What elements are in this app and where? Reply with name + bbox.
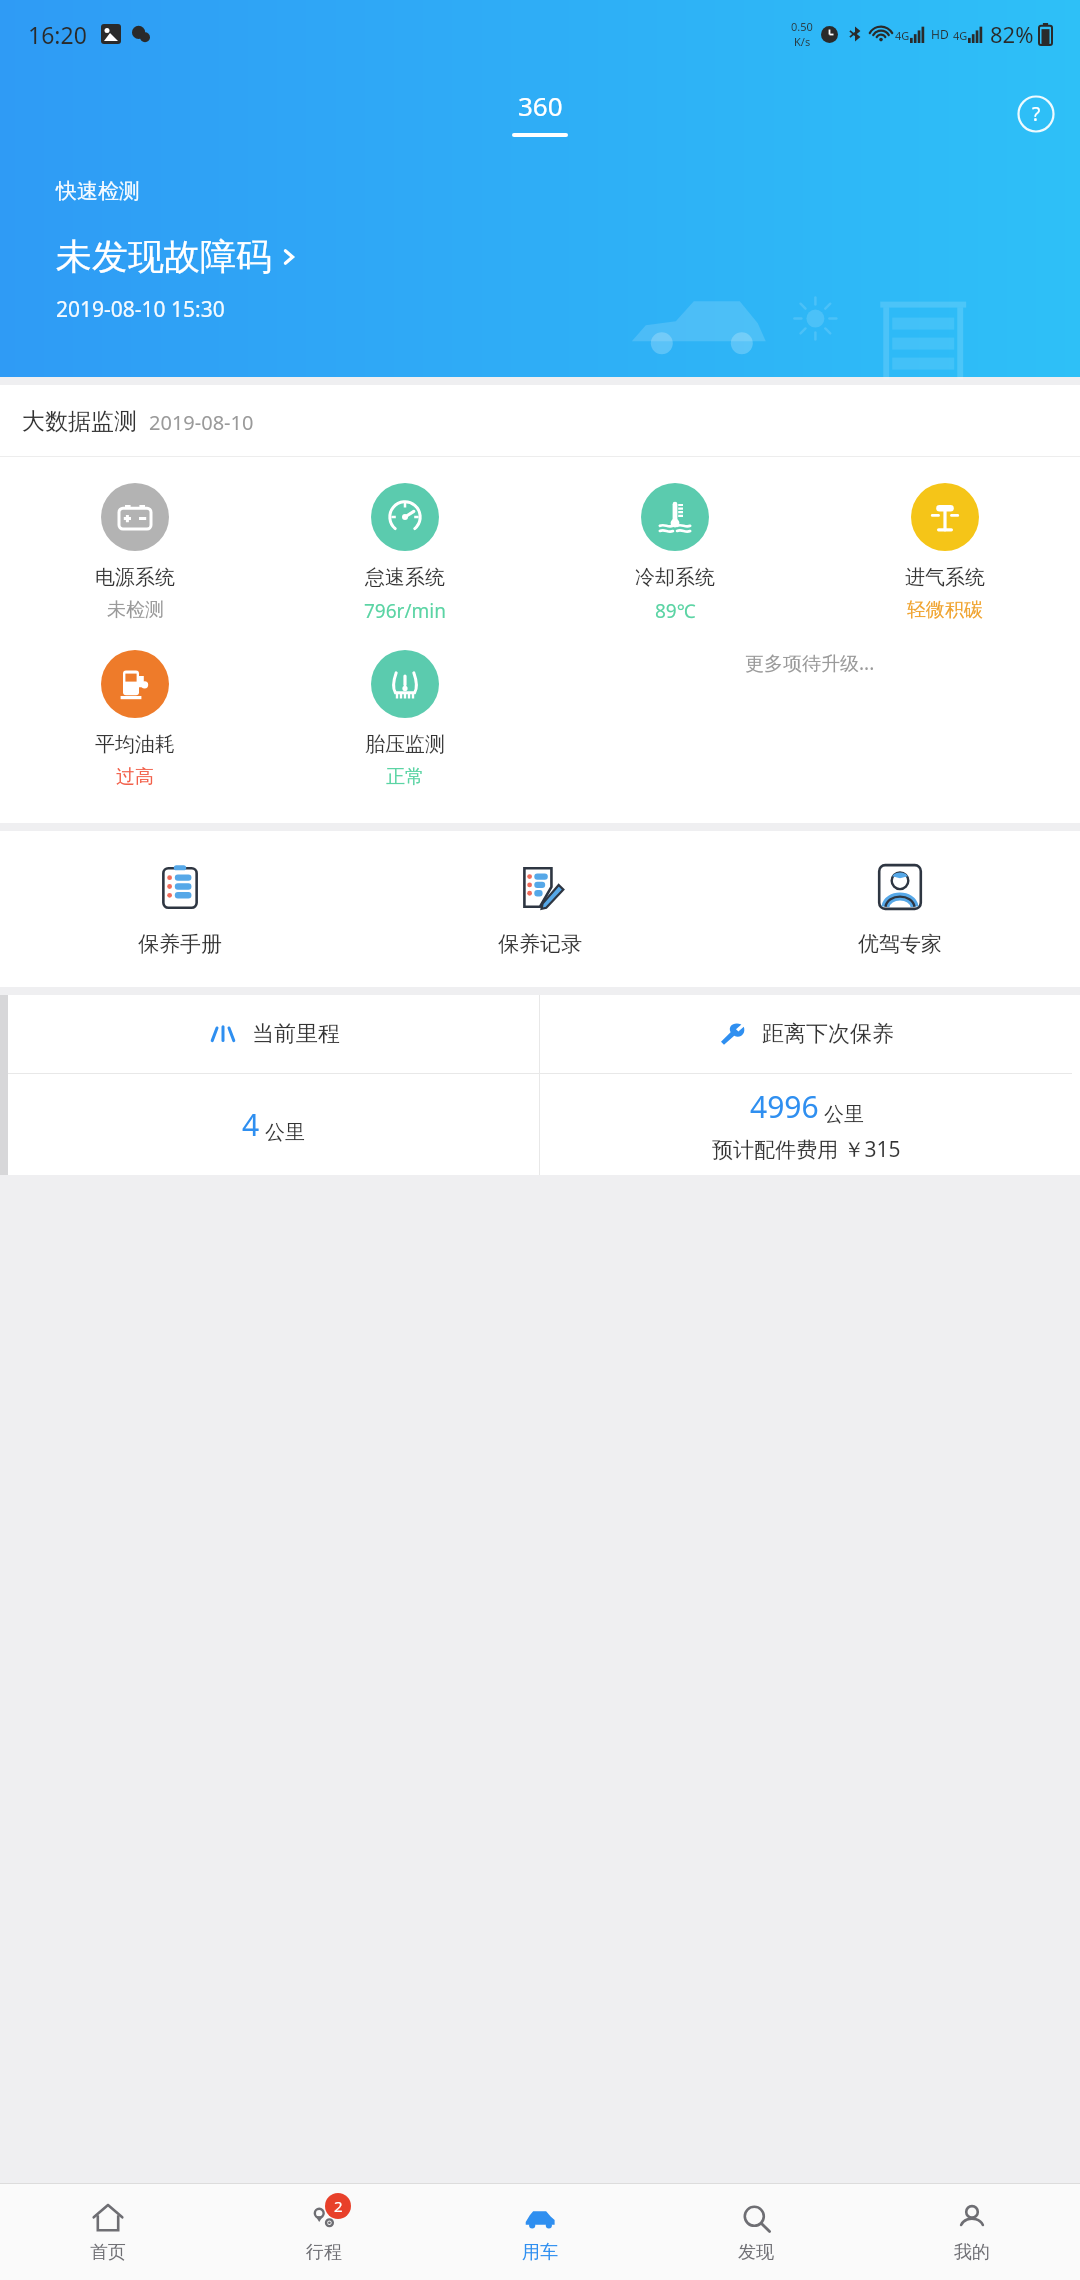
staticText: 89℃: [655, 598, 696, 624]
staticText: 4996: [750, 1086, 819, 1127]
staticText: 未发现故障码: [56, 234, 272, 279]
staticText: 首页: [90, 2241, 126, 2264]
button[interactable]: 360: [512, 88, 568, 137]
staticText: 轻微积碳: [907, 598, 983, 622]
button[interactable]: 首页: [0, 2184, 216, 2280]
staticText: 冷却系统: [635, 565, 715, 590]
button[interactable]: 未发现故障码: [56, 234, 302, 279]
staticText: ?: [1032, 101, 1041, 127]
button[interactable]: 我的: [864, 2184, 1080, 2280]
staticText: 进气系统: [905, 565, 985, 590]
button[interactable]: 保养手册: [0, 861, 360, 957]
staticText: 保养记录: [498, 931, 582, 957]
staticText: 4G: [953, 28, 968, 43]
staticText: 正常: [386, 765, 424, 789]
staticText: 2: [334, 2196, 343, 2216]
staticText: 未检测: [107, 598, 164, 622]
staticText: 胎压监测: [365, 732, 445, 757]
staticText: 4: [242, 1104, 260, 1145]
staticText: 82%: [990, 19, 1034, 49]
staticText: 预计配件费用 ￥315: [712, 1135, 901, 1164]
staticText: 360: [518, 88, 563, 123]
button[interactable]: 冷却系统: [540, 483, 810, 624]
staticText: 用车: [522, 2241, 558, 2264]
button[interactable]: 优驾专家: [720, 861, 1080, 957]
staticText: 2019-08-10 15:30: [56, 295, 225, 324]
staticText: 快速检测: [56, 178, 140, 204]
staticText: 保养手册: [138, 931, 222, 957]
staticText: 怠速系统: [365, 565, 445, 590]
staticText: 公里: [265, 1120, 305, 1145]
button[interactable]: 发现: [648, 2184, 864, 2280]
button[interactable]: 用车: [432, 2184, 648, 2280]
button[interactable]: 距离下次保养: [540, 995, 1072, 1175]
button[interactable]: 胎压监测: [270, 650, 540, 789]
staticText: 0.50: [791, 19, 813, 34]
staticText: 公里: [824, 1102, 864, 1127]
button[interactable]: 当前里程: [8, 995, 539, 1175]
staticText: 更多项待升级...: [745, 650, 875, 676]
staticText: 平均油耗: [95, 732, 175, 757]
staticText: 4G: [895, 28, 910, 43]
staticText: 电源系统: [95, 565, 175, 590]
staticText: 发现: [738, 2241, 774, 2264]
staticText: 我的: [954, 2241, 990, 2264]
staticText: 2019-08-10: [149, 409, 254, 436]
button[interactable]: 进气系统: [810, 483, 1080, 622]
button[interactable]: 怠速系统: [270, 483, 540, 624]
staticText: 优驾专家: [858, 931, 942, 957]
staticText: 行程: [306, 2241, 342, 2264]
staticText: HD: [931, 26, 949, 42]
staticText: 当前里程: [252, 1020, 340, 1048]
staticText: 距离下次保养: [762, 1020, 894, 1048]
staticText: 16:20: [28, 19, 87, 50]
button[interactable]: 电源系统: [0, 483, 270, 622]
button[interactable]: Help: [1014, 92, 1058, 136]
button[interactable]: 保养记录: [360, 861, 720, 957]
staticText: 796r/min: [364, 598, 446, 624]
staticText: 大数据监测: [22, 407, 137, 436]
button[interactable]: 2: [216, 2184, 432, 2280]
button[interactable]: 平均油耗: [0, 650, 270, 789]
staticText: K/s: [794, 34, 811, 49]
staticText: 过高: [116, 765, 154, 789]
